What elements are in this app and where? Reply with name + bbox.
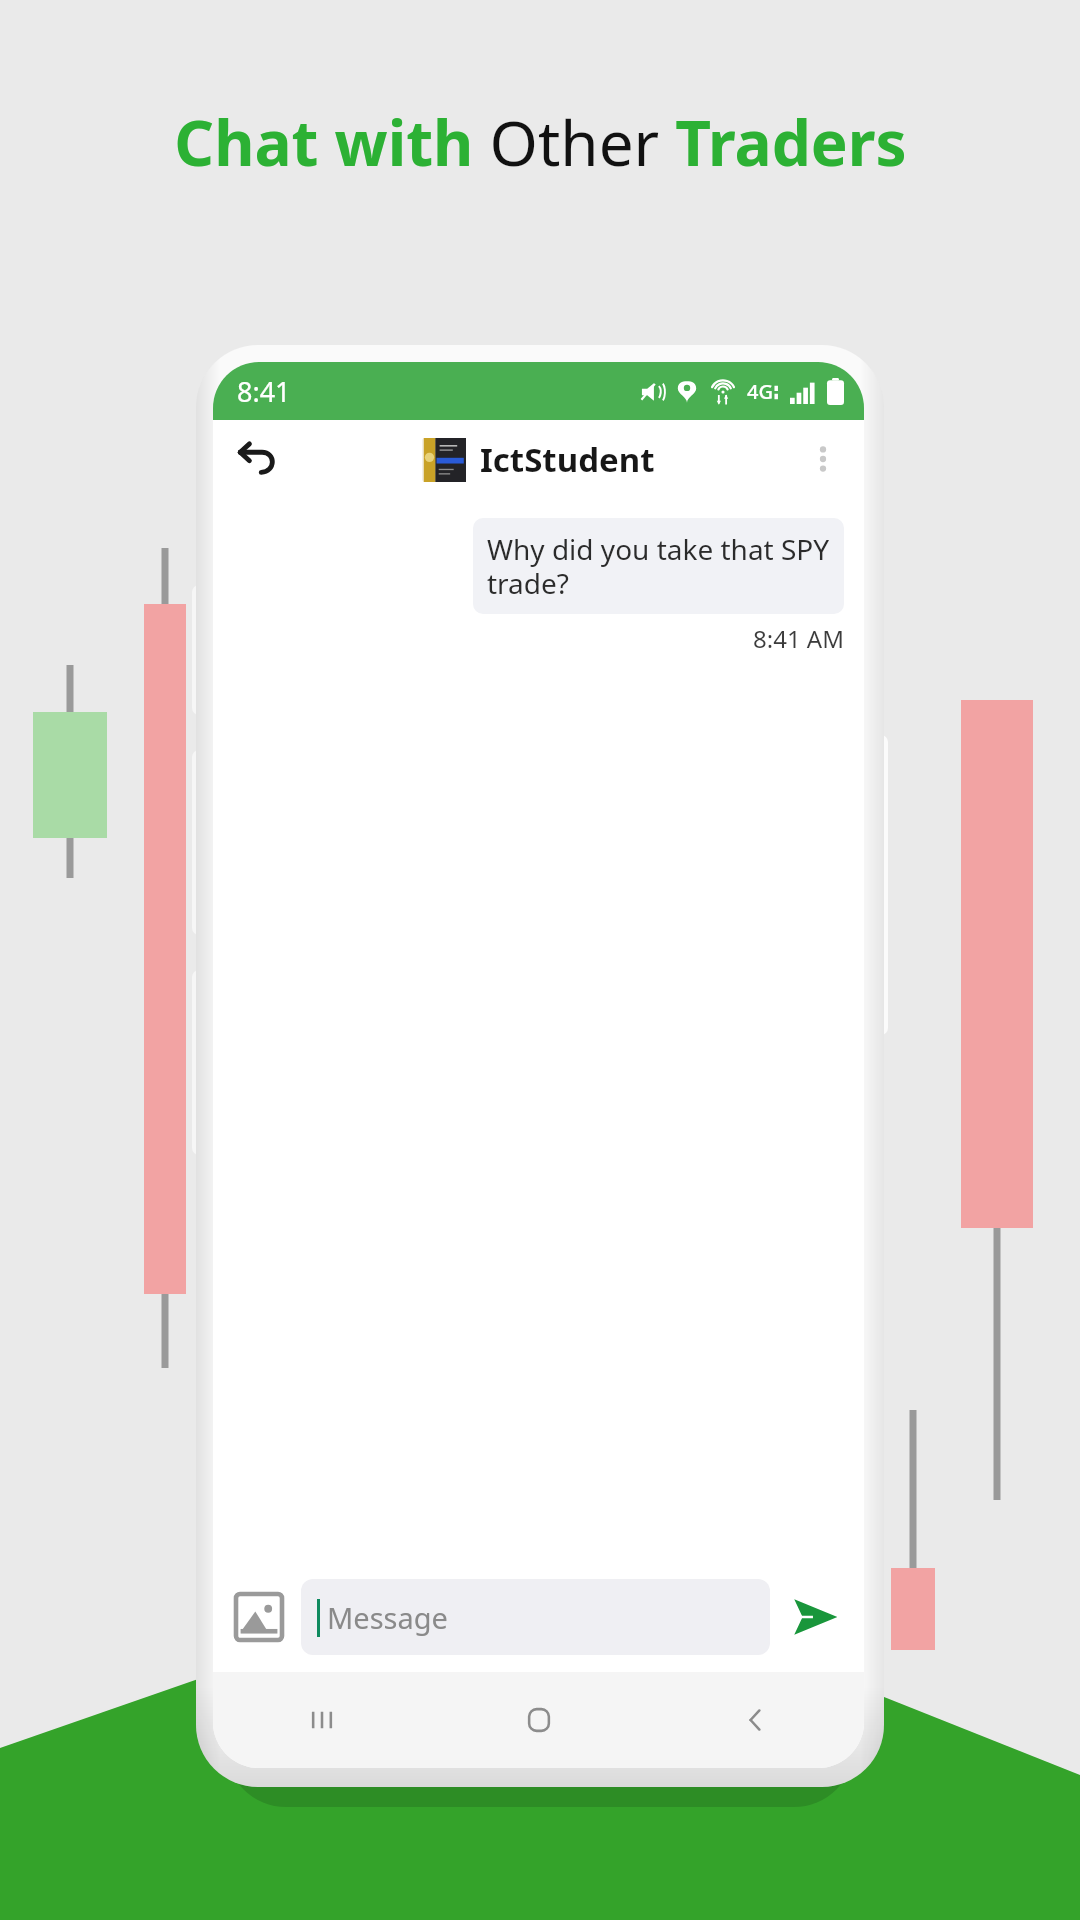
button[interactable]: Recents	[213, 1672, 430, 1768]
staticText: 8:41 AM	[753, 622, 844, 655]
button[interactable]: IctStudent	[422, 437, 655, 482]
button[interactable]: Home	[430, 1672, 647, 1768]
staticText: Why did you take that SPY trade?	[487, 530, 830, 602]
button[interactable]: Back	[647, 1672, 864, 1768]
button[interactable]: Back	[225, 427, 289, 491]
button[interactable]: Attach image	[231, 1589, 287, 1645]
button[interactable]: More options	[794, 430, 852, 488]
button[interactable]: Message	[301, 1579, 770, 1655]
button[interactable]: Why did you take that SPY trade?	[473, 518, 844, 614]
button[interactable]: Send	[782, 1585, 846, 1649]
staticText: IctStudent	[480, 437, 655, 482]
staticText: 4G	[747, 378, 773, 405]
staticText: Message	[327, 1598, 448, 1637]
staticText: Chat with Other Traders	[174, 100, 907, 184]
staticText: 8:41	[237, 373, 291, 410]
